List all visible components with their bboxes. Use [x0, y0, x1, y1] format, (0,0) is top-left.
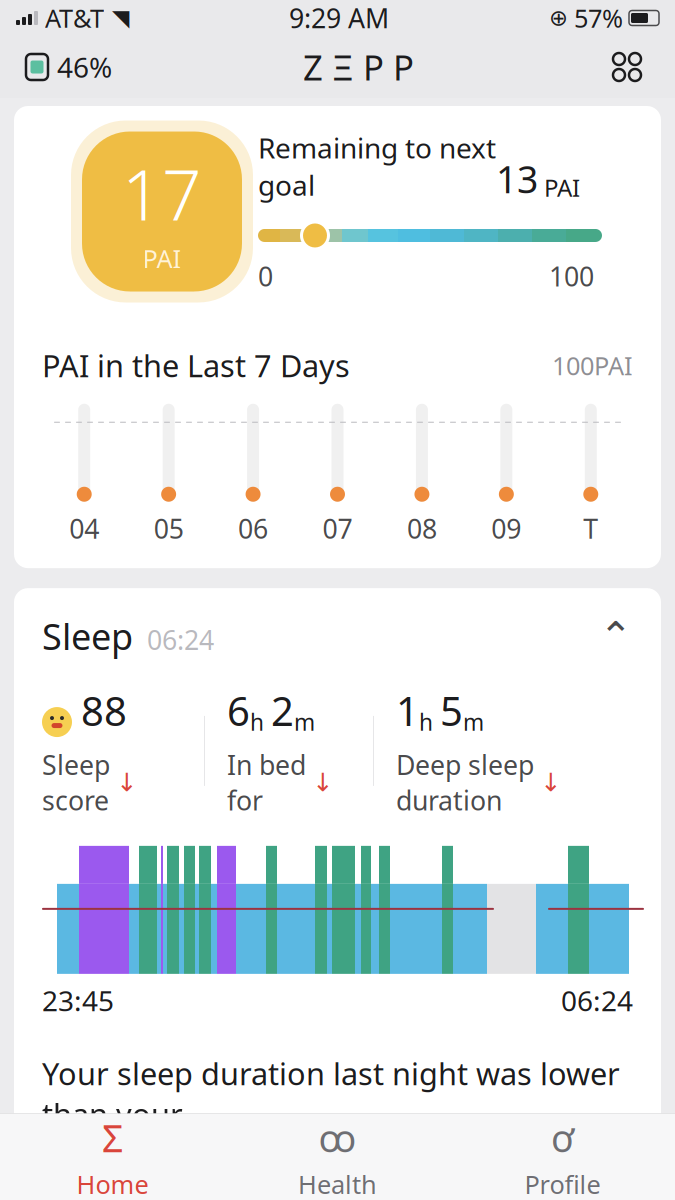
staticText: m	[294, 707, 315, 737]
staticText: 13	[496, 154, 538, 203]
staticText: h	[419, 707, 433, 737]
staticText: ↓	[116, 768, 137, 797]
staticText: 46%	[57, 48, 112, 86]
staticText: AT&T	[45, 1, 104, 35]
staticText: 06	[238, 511, 268, 546]
staticText: Deep sleep duration	[396, 747, 534, 818]
staticText: ↓	[540, 768, 561, 797]
staticText: 100	[549, 258, 594, 294]
button[interactable]: Σ	[0, 1114, 225, 1200]
staticText: ⌃	[599, 613, 633, 659]
staticText: 07	[322, 511, 352, 546]
staticText: In bed for	[227, 747, 306, 818]
staticText: 88	[81, 684, 127, 737]
staticText: ↓	[312, 768, 333, 797]
staticText: m	[463, 707, 484, 737]
staticText: 05	[154, 511, 184, 546]
staticText: Remaining to next goal	[258, 129, 496, 203]
button[interactable]: Apps	[605, 45, 649, 89]
staticText: Sleep	[42, 612, 133, 660]
staticText: 06:24	[147, 622, 214, 657]
button[interactable]: ơ	[450, 1114, 675, 1200]
staticText: 06:24	[561, 982, 633, 1019]
staticText: 0	[258, 258, 273, 294]
staticText: Health	[298, 1167, 377, 1200]
staticText: ⊕	[549, 5, 568, 31]
staticText: 04	[69, 511, 99, 546]
staticText: 2	[271, 684, 294, 737]
staticText: Sleep score	[42, 747, 110, 818]
staticText: Profile	[524, 1167, 600, 1200]
staticText: 6	[227, 684, 250, 737]
staticText: 17	[122, 148, 202, 240]
staticText: PAI	[142, 242, 181, 275]
button[interactable]: 17	[14, 106, 661, 568]
staticText: 23:45	[42, 982, 114, 1019]
staticText: Z Ξ P P	[303, 44, 414, 90]
button[interactable]: Collapse Sleep	[14, 612, 661, 660]
staticText: 5	[440, 684, 463, 737]
staticText: h	[250, 707, 264, 737]
staticText: 09	[491, 511, 521, 546]
staticText: ơ	[551, 1113, 574, 1162]
staticText: 08	[407, 511, 437, 546]
staticText: T	[583, 511, 598, 546]
staticText: 9:29 AM	[289, 0, 389, 36]
staticText: Home	[76, 1167, 148, 1200]
staticText: ꝏ	[318, 1113, 356, 1162]
staticText: PAI	[538, 172, 580, 203]
staticText: 100PAI	[552, 348, 633, 382]
button[interactable]: ꝏ	[225, 1114, 450, 1200]
button[interactable]: Watch battery 46 percent	[26, 48, 112, 86]
staticText: Σ	[102, 1113, 123, 1162]
staticText: 1	[396, 684, 419, 737]
staticText: PAI in the Last 7 Days	[42, 345, 350, 386]
staticText: 57%	[574, 1, 623, 35]
staticText: Your sleep duration last night was lower…	[42, 1053, 620, 1175]
staticText: ◥	[112, 5, 129, 31]
